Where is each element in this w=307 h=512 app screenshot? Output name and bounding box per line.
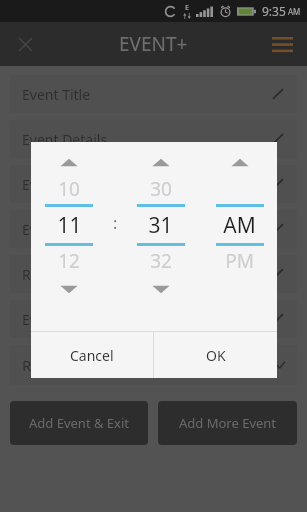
button[interactable]: Cancel bbox=[31, 332, 153, 378]
button[interactable]: Close bbox=[8, 27, 42, 61]
staticText: 12 bbox=[58, 248, 80, 274]
button[interactable]: Event Time bbox=[10, 210, 297, 248]
staticText: Event Time bbox=[22, 220, 95, 239]
staticText: Event Tone bbox=[22, 310, 94, 329]
staticText: Event Title bbox=[22, 85, 91, 104]
button[interactable]: Event Title bbox=[10, 75, 297, 113]
button[interactable]: Repeat Event bbox=[10, 345, 297, 385]
staticText: AM bbox=[223, 211, 256, 240]
staticText: Event Details bbox=[22, 130, 108, 149]
staticText: Repeat Event bbox=[22, 355, 115, 375]
button[interactable] bbox=[123, 150, 198, 174]
staticText: Add More Event bbox=[179, 414, 277, 432]
staticText: OK bbox=[206, 346, 226, 365]
staticText: Reminder bbox=[22, 265, 87, 284]
staticText: 9:35 bbox=[262, 3, 286, 19]
button[interactable]: Event Details bbox=[10, 120, 297, 158]
staticText: : bbox=[113, 212, 118, 234]
staticText: EveryDay bbox=[202, 355, 268, 375]
staticText: 11 bbox=[57, 211, 82, 240]
button[interactable] bbox=[31, 276, 107, 302]
button[interactable]: Add More Event bbox=[158, 401, 297, 445]
button[interactable]: Event Date bbox=[10, 165, 297, 203]
staticText: 30 bbox=[150, 176, 172, 202]
staticText: Cancel bbox=[70, 346, 114, 365]
button[interactable]: OK bbox=[154, 332, 277, 378]
staticText: Add Event & Exit bbox=[29, 414, 129, 432]
button[interactable] bbox=[31, 150, 107, 174]
staticText: Event Date bbox=[22, 175, 94, 194]
button[interactable] bbox=[202, 150, 277, 174]
staticText: 10 bbox=[58, 176, 80, 202]
button[interactable]: Event Tone bbox=[10, 300, 297, 338]
staticText: PM bbox=[225, 248, 254, 274]
staticText: AM bbox=[288, 6, 301, 17]
button[interactable] bbox=[123, 276, 198, 302]
button[interactable]: Add Event & Exit bbox=[10, 401, 148, 445]
staticText: E bbox=[185, 3, 189, 13]
staticText: 31 bbox=[148, 211, 173, 240]
button[interactable]: Menu bbox=[265, 27, 299, 61]
staticText: EVENT+ bbox=[119, 31, 188, 57]
staticText: 32 bbox=[150, 248, 172, 274]
button[interactable]: Reminder bbox=[10, 255, 297, 293]
